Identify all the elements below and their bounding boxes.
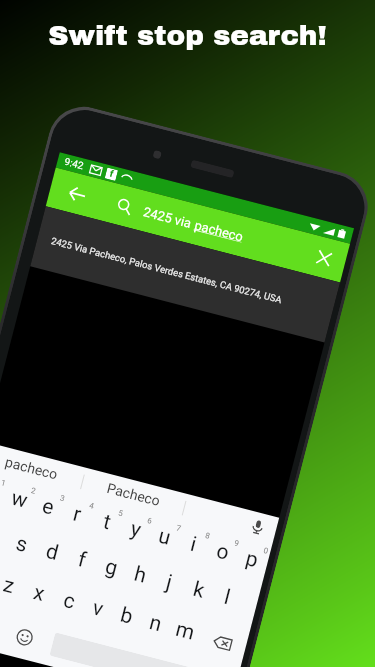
button[interactable]: v <box>77 586 117 635</box>
staticText: 9:42 <box>63 156 85 172</box>
button[interactable]: Back <box>46 168 108 220</box>
button[interactable]: y <box>115 507 155 556</box>
button[interactable]: p <box>231 537 271 586</box>
button[interactable]: g <box>91 545 131 594</box>
staticText: 7 <box>175 523 182 533</box>
button[interactable]: u <box>144 514 184 564</box>
staticText: b <box>118 603 136 630</box>
staticText: 1 <box>0 478 7 488</box>
button[interactable]: k <box>178 568 218 617</box>
staticText: 8 <box>204 531 211 541</box>
staticText: g <box>102 554 120 581</box>
button[interactable]: e <box>28 484 68 534</box>
staticText: pacheco <box>193 217 245 244</box>
staticText: v <box>90 595 107 622</box>
button[interactable]: q <box>0 469 9 518</box>
staticText: 0 <box>262 546 269 556</box>
staticText: f <box>75 547 89 573</box>
button[interactable]: n <box>135 601 175 650</box>
button[interactable]: o <box>202 530 242 579</box>
button[interactable]: r <box>57 492 97 541</box>
button[interactable]: b <box>106 593 146 643</box>
button[interactable]: z <box>0 563 29 612</box>
button[interactable]: t <box>86 499 126 549</box>
button[interactable]: i <box>173 522 213 571</box>
button[interactable]: h <box>120 553 160 602</box>
staticText: m <box>173 617 198 646</box>
staticText: 4 <box>88 501 95 511</box>
staticText: e <box>40 493 57 521</box>
staticText: w <box>9 485 30 514</box>
staticText: p <box>243 546 261 573</box>
button[interactable]: m <box>164 609 204 658</box>
staticText: k <box>190 577 207 604</box>
button[interactable]: j <box>149 560 189 609</box>
staticText: f <box>108 169 115 180</box>
button[interactable]: f <box>61 537 102 587</box>
staticText: z <box>1 572 17 599</box>
button[interactable]: d <box>31 530 72 579</box>
button[interactable]: Backspace <box>193 616 251 667</box>
button[interactable]: w <box>0 477 39 526</box>
staticText: d <box>43 539 61 566</box>
button[interactable]: x <box>18 571 59 620</box>
staticText: pacheco <box>4 454 60 483</box>
staticText: 2425 via <box>142 204 197 232</box>
staticText: 2425 Via Pacheco, Palos Verdes Estates, … <box>50 235 283 305</box>
staticText: j <box>163 570 175 596</box>
staticText: r <box>71 501 85 528</box>
button[interactable]: s <box>1 522 42 571</box>
staticText: l <box>221 585 234 611</box>
staticText: t <box>101 509 114 535</box>
button[interactable]: Pacheco <box>79 468 187 521</box>
staticText: n <box>147 610 165 637</box>
button[interactable]: Clear <box>297 233 350 282</box>
button[interactable]: Voice input <box>235 508 279 545</box>
staticText: 5 <box>117 508 124 518</box>
staticText: y <box>128 516 144 543</box>
staticText: x <box>31 580 47 607</box>
button[interactable]: c <box>48 578 88 628</box>
staticText: h <box>131 562 149 589</box>
staticText: u <box>156 524 174 551</box>
button[interactable]: 2425 Via Pacheco, Palos Verdes Estates, … <box>30 206 340 342</box>
staticText: Swift stop search! <box>48 20 327 50</box>
button[interactable] <box>49 632 195 667</box>
staticText: 3 <box>59 493 66 503</box>
button[interactable]: Emoji <box>0 608 58 665</box>
button[interactable]: pacheco <box>0 442 86 495</box>
staticText: i <box>188 532 200 557</box>
staticText: c <box>61 588 77 615</box>
staticText: Pacheco <box>105 480 162 509</box>
button[interactable]: l <box>207 575 247 624</box>
staticText: s <box>13 531 30 558</box>
staticText: 2 <box>30 486 37 496</box>
staticText: 9 <box>233 538 240 548</box>
staticText: o <box>214 539 232 566</box>
staticText: 6 <box>146 516 153 526</box>
